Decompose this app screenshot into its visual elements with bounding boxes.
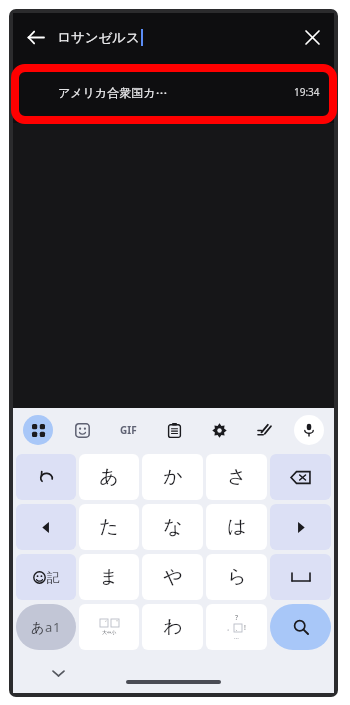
button[interactable]: PUNCT (206, 604, 267, 650)
button[interactable]: Clipboard (159, 415, 189, 445)
staticText: わ (163, 615, 183, 639)
staticText: a (45, 618, 53, 636)
button[interactable]: Voice input (294, 415, 324, 445)
button[interactable]: EMOJI_KI (16, 554, 76, 600)
button[interactable]: LEFT (16, 504, 76, 550)
staticText: 記 (47, 569, 60, 585)
button[interactable]: ら (206, 554, 267, 600)
button[interactable]: Handwriting (249, 415, 279, 445)
staticText: 大⇔小 (102, 629, 117, 635)
staticText: ロサンゼルス (57, 29, 140, 46)
staticText: は (227, 515, 247, 539)
button[interactable]: BACKSPACE (270, 454, 331, 500)
button[interactable]: Stickers (67, 415, 97, 445)
button[interactable]: UNDO (16, 454, 76, 500)
staticText: な (163, 515, 183, 539)
staticText: さ (227, 465, 247, 489)
staticText: ゛ (101, 619, 108, 627)
button[interactable]: DAKUTEN (79, 604, 139, 650)
staticText: ら (227, 565, 247, 589)
staticText: あ (31, 619, 45, 635)
staticText: 1 (53, 618, 61, 636)
button[interactable]: SEARCH (270, 604, 331, 650)
staticText: 19:34 (294, 85, 320, 99)
staticText: た (99, 515, 119, 539)
button[interactable]: アメリカ合衆国カリフォルニア州… (13, 70, 334, 114)
button[interactable]: MODE (16, 604, 76, 650)
button[interactable]: Keyboard options (23, 415, 53, 445)
staticText: ... (234, 633, 239, 641)
button[interactable]: Back (13, 15, 57, 59)
button[interactable]: た (79, 504, 139, 550)
staticText: か (163, 465, 183, 489)
button[interactable]: RIGHT (270, 504, 331, 550)
button[interactable]: わ (142, 604, 203, 650)
button[interactable]: Hide keyboard (45, 660, 71, 686)
button[interactable]: か (142, 454, 203, 500)
staticText: GIF (120, 423, 137, 437)
staticText: ! (244, 623, 246, 633)
staticText: や (163, 565, 183, 589)
button[interactable]: GIF (111, 413, 145, 447)
button[interactable]: な (142, 504, 203, 550)
button[interactable]: SPACE (270, 554, 331, 600)
staticText: 、 (235, 624, 241, 632)
staticText: ゜ (112, 619, 119, 627)
button[interactable]: さ (206, 454, 267, 500)
button[interactable]: や (142, 554, 203, 600)
button[interactable]: あ (79, 454, 139, 500)
button[interactable]: は (206, 504, 267, 550)
staticText: ま (99, 565, 119, 589)
staticText: ? (235, 613, 239, 623)
staticText: あ (99, 465, 119, 489)
button[interactable]: ま (79, 554, 139, 600)
staticText: アメリカ合衆国カリフォルニア州… (58, 85, 176, 100)
button[interactable]: Settings (204, 415, 234, 445)
staticText: 。 (227, 624, 233, 632)
button[interactable]: Clear (290, 15, 334, 59)
